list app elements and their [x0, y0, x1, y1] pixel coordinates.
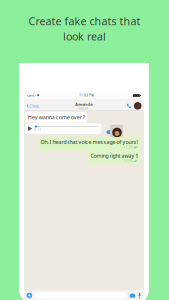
button[interactable]: Call: [126, 103, 131, 108]
button[interactable]: Record voice message: [138, 293, 141, 298]
button[interactable]: Camera: [130, 293, 135, 298]
staticText: Oh, I heard that voice message of yours!: [40, 138, 137, 145]
button[interactable]: Contact info: [134, 102, 141, 110]
staticText: 0:16: [35, 128, 42, 132]
staticText: 12:59: [124, 146, 133, 149]
staticText: Hey wanna come over ?: [28, 114, 85, 121]
staticText: 12:59: [124, 159, 133, 163]
staticText: Coming right away !!: [90, 152, 137, 159]
staticText: look real: [63, 29, 106, 43]
staticText: Create fake chats that: [28, 14, 140, 28]
staticText: 11:03 PM: [79, 94, 93, 97]
staticText: Carrier: [27, 94, 36, 97]
staticText: Amanda: [75, 101, 92, 107]
staticText: Chats: [29, 103, 39, 108]
button[interactable]: Add attachment: [27, 293, 32, 298]
staticText: online: [79, 107, 89, 110]
button[interactable]: Chats: [26, 101, 41, 111]
